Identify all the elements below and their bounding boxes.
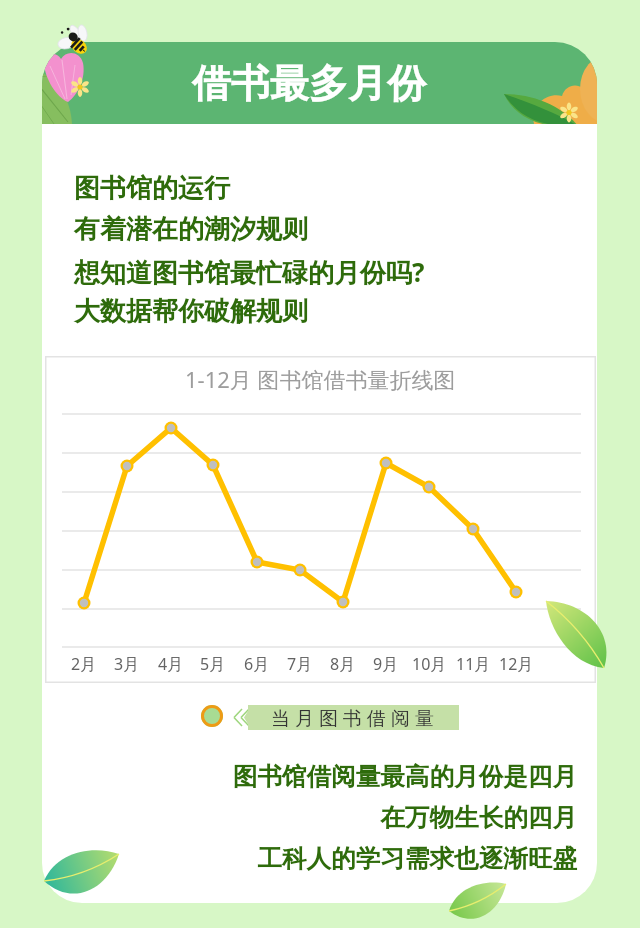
staticText: 想知道图书馆最忙碌的月份吗? [74, 254, 425, 295]
staticText: 工科人的学习需求也逐渐旺盛 [257, 843, 577, 884]
button[interactable]: 1-12月 图书馆借书量折线图 [45, 356, 596, 683]
staticText: 2月 [71, 653, 97, 675]
staticText: 大数据帮你破解规则 [74, 295, 308, 336]
staticText: 3月 [114, 653, 140, 675]
staticText: 8月 [330, 653, 356, 675]
staticText: 图书馆借阅量最高的月份是四月 [232, 761, 577, 802]
staticText: 当 月 图 书 借 阅 量 [271, 705, 434, 730]
staticText: 图书馆的运行 [74, 172, 230, 213]
staticText: 6月 [244, 653, 270, 675]
staticText: 5月 [200, 653, 226, 675]
staticText: 有着潜在的潮汐规则 [74, 213, 308, 254]
staticText: 11月 [456, 653, 491, 675]
staticText: 借书最多月份 [192, 59, 426, 108]
staticText: 12月 [499, 653, 534, 675]
button[interactable]: 当 月 图 书 借 阅 量 [198, 700, 464, 734]
staticText: 1-12月 图书馆借书量折线图 [185, 364, 456, 394]
staticText: 7月 [287, 653, 313, 675]
staticText: 10月 [412, 653, 447, 675]
staticText: 在万物生长的四月 [380, 802, 577, 843]
staticText: 9月 [373, 653, 399, 675]
staticText: 4月 [158, 653, 184, 675]
